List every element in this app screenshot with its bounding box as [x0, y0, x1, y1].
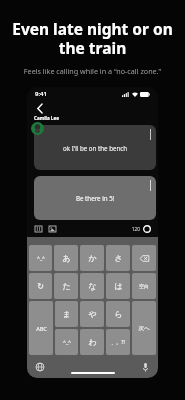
button[interactable]: 次へ [132, 301, 156, 355]
staticText: は [114, 281, 123, 291]
staticText: Camila Lee [34, 115, 59, 121]
button[interactable]: 、。?! [106, 329, 130, 355]
button[interactable]: Back [33, 101, 47, 115]
staticText: ok I'll be on the bench [63, 144, 128, 152]
button[interactable]: ↻ [29, 273, 52, 299]
staticText: さ [114, 253, 123, 263]
button[interactable]: さ [106, 245, 130, 271]
staticText: Even late night or on the train [10, 18, 175, 58]
button[interactable]: ま [55, 301, 78, 327]
staticText: 空白 [139, 283, 149, 289]
staticText: あ [62, 253, 71, 263]
button[interactable]: Change language [34, 361, 46, 373]
button[interactable]: わ [80, 329, 104, 355]
staticText: ま [62, 309, 71, 319]
button[interactable]: あ [54, 245, 78, 271]
staticText: ↻ [37, 282, 44, 291]
button[interactable]: ^_^ [29, 245, 52, 271]
button[interactable]: ^_^ [55, 329, 78, 355]
button[interactable]: か [80, 245, 104, 271]
button[interactable]: Be there in 5! [34, 176, 156, 220]
staticText: 、。?! [111, 339, 125, 346]
button[interactable]: は [106, 273, 130, 299]
button[interactable]: ok I'll be on the bench [34, 125, 156, 170]
button[interactable]: Camila Lee avatar [31, 122, 44, 135]
staticText: か [88, 253, 97, 263]
button[interactable]: Keyboard [33, 223, 44, 234]
staticText: ^_^ [37, 255, 45, 262]
button[interactable]: ら [106, 301, 130, 327]
staticText: 9:41 [35, 90, 47, 98]
staticText: 次へ [138, 325, 150, 332]
staticText: な [88, 281, 97, 291]
staticText: や [88, 309, 97, 319]
staticText: Feels like calling while in a “no-call z… [8, 66, 177, 76]
button[interactable]: Voice input [139, 361, 151, 373]
button[interactable]: Delete [132, 245, 156, 271]
button[interactable]: 空白 [132, 273, 156, 299]
staticText: た [62, 281, 71, 291]
button[interactable]: な [80, 273, 104, 299]
button[interactable]: Send [141, 223, 152, 234]
button[interactable]: Image [47, 223, 58, 234]
staticText: わ [88, 337, 97, 347]
staticText: Be there in 5! [76, 194, 115, 202]
staticText: ^_^ [63, 339, 71, 346]
button[interactable]: た [54, 273, 78, 299]
button[interactable]: ABC [29, 301, 53, 355]
button[interactable]: や [80, 301, 104, 327]
staticText: 120 [132, 226, 140, 232]
staticText: ら [114, 309, 123, 319]
staticText: ABC [36, 325, 47, 332]
